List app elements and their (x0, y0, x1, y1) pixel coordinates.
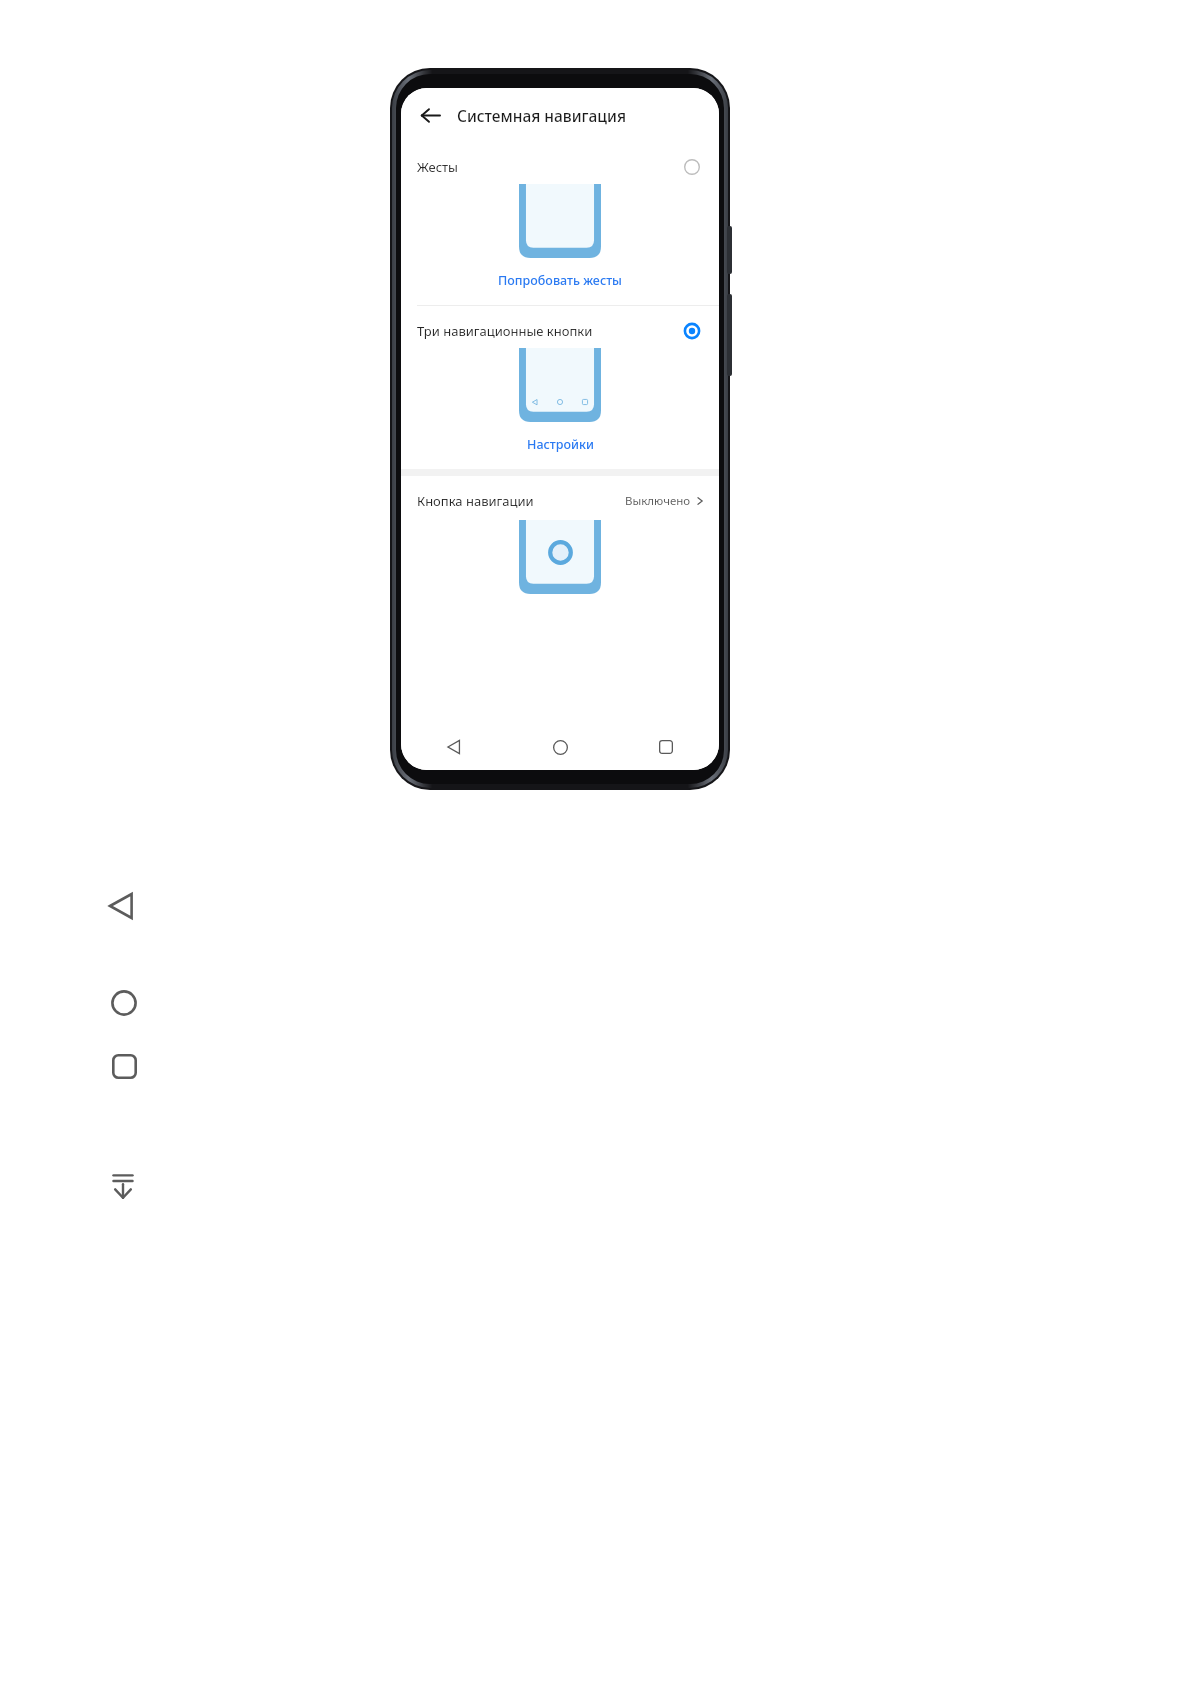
button[interactable]: Настройки (401, 432, 719, 457)
button[interactable]: Recents (108, 1050, 140, 1082)
staticText: Попробовать жесты (498, 272, 622, 289)
button[interactable]: Home (108, 987, 140, 1019)
button[interactable]: Кнопка навигации (401, 476, 719, 514)
staticText: Жесты (417, 158, 458, 176)
button[interactable]: Recents (613, 724, 719, 770)
button[interactable]: Download (105, 1168, 141, 1204)
button[interactable]: Три навигационные кнопки (401, 306, 719, 469)
button[interactable]: Жесты (401, 142, 719, 305)
button[interactable]: Home (507, 724, 613, 770)
button[interactable]: Selected (681, 320, 703, 342)
staticText: Выключено (625, 493, 691, 509)
staticText: Системная навигация (457, 105, 626, 126)
button[interactable]: Back (401, 724, 507, 770)
staticText: Настройки (527, 436, 594, 453)
button[interactable]: Not selected (681, 156, 703, 178)
button[interactable]: Попробовать жесты (401, 268, 719, 293)
button[interactable]: Back (104, 888, 140, 924)
button[interactable]: Back (415, 100, 445, 130)
staticText: Три навигационные кнопки (417, 322, 593, 340)
staticText: Кнопка навигации (417, 492, 534, 510)
